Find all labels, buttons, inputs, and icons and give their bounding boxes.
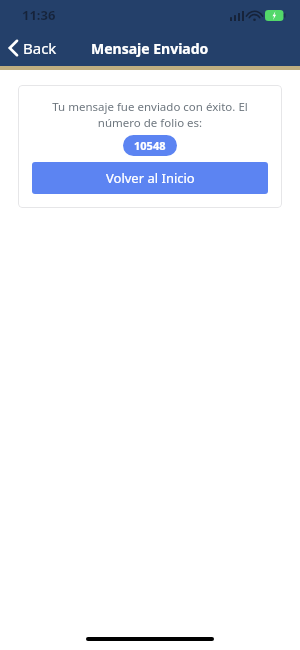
staticText: Volver al Inicio xyxy=(106,169,195,187)
staticText: Back xyxy=(23,38,57,58)
staticText: Mensaje Enviado xyxy=(91,39,209,58)
staticText: 10548 xyxy=(134,138,166,153)
button[interactable]: 10548 xyxy=(123,135,177,156)
staticText: 11:36 xyxy=(22,6,56,24)
button[interactable]: Back xyxy=(0,30,67,66)
button[interactable]: Volver al Inicio xyxy=(32,162,268,194)
staticText: Tu mensaje fue enviado con éxito. El núm… xyxy=(32,99,268,130)
